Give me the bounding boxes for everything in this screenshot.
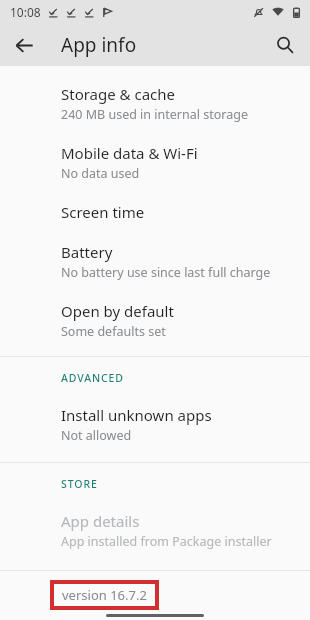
staticText: Screen time <box>61 202 145 222</box>
button[interactable]: Install unknown apps <box>0 395 310 454</box>
button[interactable]: Storage & cache <box>0 74 310 133</box>
staticText: Storage & cache <box>61 84 176 104</box>
button: App details <box>0 501 310 560</box>
button[interactable]: Screen time <box>0 192 310 232</box>
staticText: App installed from Package installer <box>61 533 272 550</box>
staticText: Open by default <box>61 301 174 321</box>
button[interactable]: Mobile data & Wi-Fi <box>0 133 310 192</box>
button[interactable]: Back <box>7 28 41 62</box>
button[interactable]: Battery <box>0 232 310 291</box>
staticText: Not allowed <box>61 427 132 444</box>
button[interactable]: Open by default <box>0 291 310 350</box>
staticText: No battery use since last full charge <box>61 264 271 281</box>
staticText: STORE <box>61 477 98 491</box>
staticText: Some defaults set <box>61 323 166 340</box>
staticText: 240 MB used in internal storage <box>61 106 248 123</box>
staticText: Mobile data & Wi-Fi <box>61 143 198 163</box>
staticText: App details <box>61 511 140 531</box>
button[interactable]: Search <box>268 28 302 62</box>
staticText: App info <box>61 32 137 58</box>
staticText: ADVANCED <box>61 371 124 385</box>
staticText: Battery <box>61 242 113 262</box>
staticText: 10:08 <box>10 4 41 20</box>
staticText: version 16.7.2 <box>62 586 147 604</box>
staticText: Install unknown apps <box>61 405 212 425</box>
staticText: No data used <box>61 165 140 182</box>
